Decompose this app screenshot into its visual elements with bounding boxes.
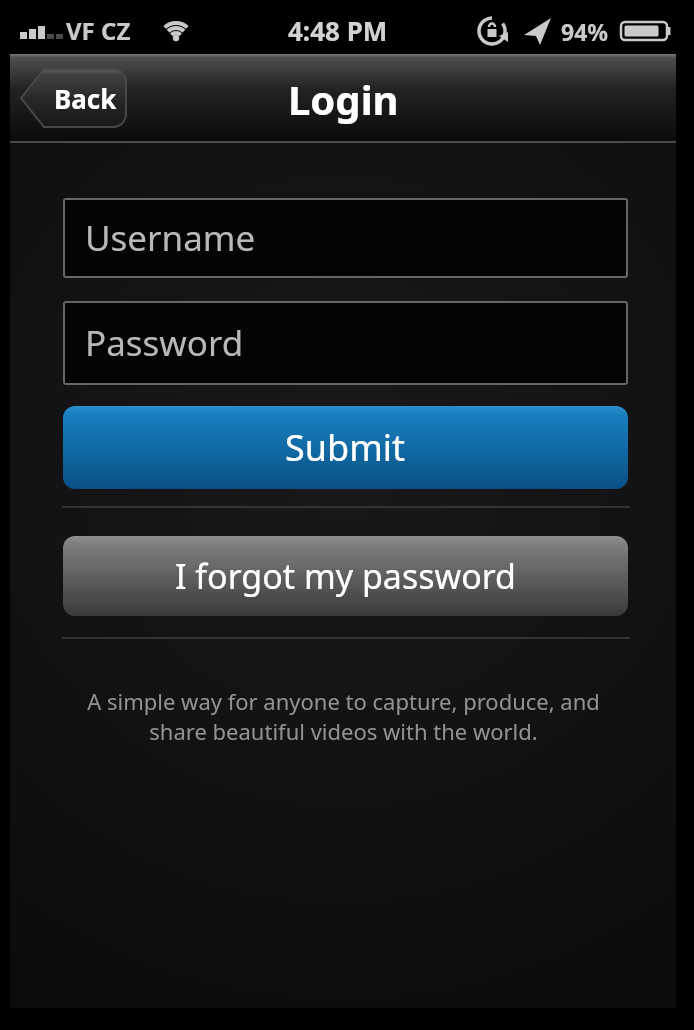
staticText: Submit <box>285 423 406 472</box>
staticText: I forgot my password <box>175 553 517 599</box>
button[interactable]: Submit <box>63 406 628 489</box>
button[interactable]: I forgot my password <box>63 536 628 616</box>
staticText: 4:48 PM <box>288 13 388 48</box>
button[interactable]: Username <box>63 198 628 278</box>
button[interactable]: Back <box>21 67 126 129</box>
staticText: VF CZ <box>66 14 131 47</box>
staticText: Login <box>288 72 399 126</box>
staticText: Back <box>54 81 117 116</box>
staticText: A simple way for anyone to capture, prod… <box>87 686 600 746</box>
button[interactable]: Password <box>63 301 628 385</box>
staticText: 94% <box>561 16 609 47</box>
staticText: Username <box>85 214 256 262</box>
staticText: Password <box>85 319 244 367</box>
